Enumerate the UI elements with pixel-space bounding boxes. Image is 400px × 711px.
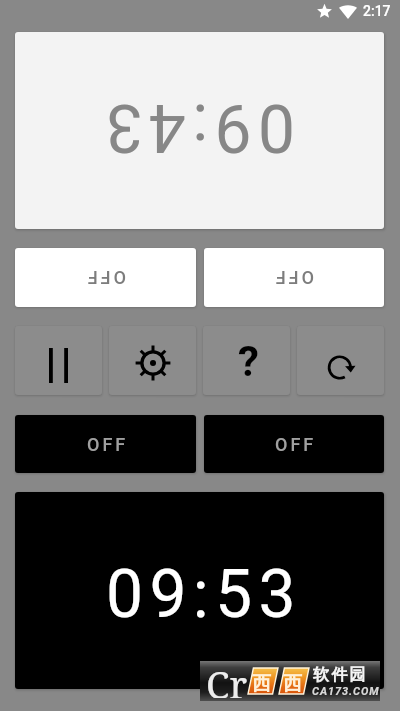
button[interactable]: Reset bbox=[297, 326, 384, 395]
staticText: 2:17 bbox=[363, 3, 391, 19]
button[interactable]: Player two delay off bbox=[204, 415, 384, 473]
button[interactable]: Player two clock bbox=[15, 492, 384, 689]
button[interactable]: Settings bbox=[109, 326, 196, 395]
button[interactable]: Player two mode off bbox=[204, 248, 384, 307]
staticText: 09:53 bbox=[106, 556, 302, 633]
staticText: OFF bbox=[87, 434, 129, 455]
staticText: 西 bbox=[283, 672, 302, 696]
staticText: Cr bbox=[206, 658, 248, 698]
staticText: OFF bbox=[272, 267, 314, 288]
button[interactable]: Player one mode off bbox=[15, 248, 196, 307]
button[interactable]: Help bbox=[203, 326, 290, 395]
staticText: 软件园 bbox=[313, 665, 368, 685]
staticText: 09:43 bbox=[99, 89, 295, 166]
staticText: OFF bbox=[84, 267, 126, 288]
staticText: 西 bbox=[252, 672, 271, 696]
button[interactable]: Player one clock bbox=[15, 32, 384, 229]
staticText: OFF bbox=[275, 434, 317, 455]
staticText: ? bbox=[238, 337, 259, 386]
button[interactable]: Pause bbox=[15, 326, 102, 395]
staticText: CA173.COM bbox=[312, 685, 380, 698]
button[interactable]: Player one delay off bbox=[15, 415, 196, 473]
